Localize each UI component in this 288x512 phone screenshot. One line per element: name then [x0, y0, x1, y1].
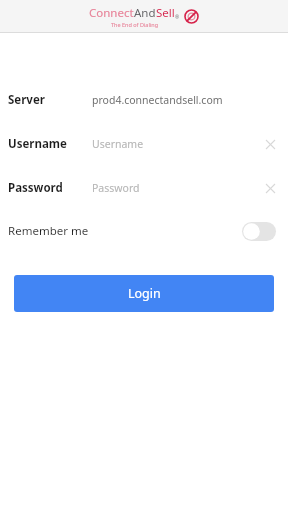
staticText: prod4.connectandsell.com [92, 93, 223, 107]
staticText: ® [175, 14, 180, 21]
button[interactable]: Clear Username [262, 136, 278, 152]
staticText: Sell [156, 5, 175, 21]
button[interactable]: Username [0, 131, 288, 157]
button[interactable]: Login [14, 275, 274, 312]
staticText: Server [8, 92, 45, 108]
staticText: Connect [89, 5, 134, 21]
staticText: Password [8, 180, 63, 196]
staticText: Username [8, 136, 67, 152]
button[interactable]: Server [0, 87, 288, 113]
staticText: Password [92, 181, 140, 195]
staticText: And [134, 5, 156, 21]
button[interactable]: Password [0, 175, 288, 201]
staticText: The End of Dialing [111, 21, 159, 28]
staticText: Username [92, 137, 144, 151]
button[interactable]: Remember me toggle [242, 222, 276, 241]
staticText: Remember me [8, 223, 89, 239]
staticText: Login [128, 285, 161, 302]
button[interactable]: Remember me [0, 217, 288, 245]
button[interactable]: Clear Password [262, 180, 278, 196]
